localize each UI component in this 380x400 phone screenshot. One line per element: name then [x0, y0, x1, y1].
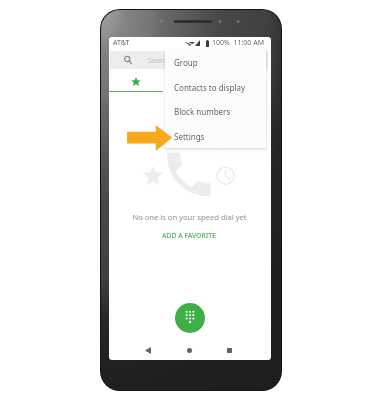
staticText: ADD A FAVORITE [162, 231, 216, 240]
button[interactable]: Recent apps [216, 338, 242, 360]
staticText: Search contacts [148, 55, 201, 65]
button[interactable]: Block numbers [165, 99, 266, 124]
staticText: No one is on your speed dial yet [132, 212, 247, 222]
button[interactable]: Open dialpad [175, 303, 205, 333]
button[interactable]: Group [165, 50, 266, 75]
button[interactable]: Settings [165, 124, 266, 149]
staticText: Block numbers [174, 106, 231, 117]
staticText: Group [174, 57, 198, 68]
button[interactable]: ADD A FAVORITE [158, 229, 220, 242]
staticText: 100% 11:00 AM [212, 38, 265, 48]
button[interactable]: Favorites tab [109, 70, 163, 92]
staticText: AT&T [113, 38, 130, 48]
button[interactable]: Contacts to display [165, 75, 266, 100]
button[interactable]: Contacts tab [217, 70, 271, 92]
button[interactable]: Search contacts [110, 51, 268, 69]
button[interactable]: Recents tab [163, 70, 217, 92]
button[interactable]: Home [176, 338, 202, 360]
staticText: Contacts to display [174, 82, 246, 93]
staticText: Settings [174, 131, 205, 142]
button[interactable]: Back [135, 338, 161, 360]
